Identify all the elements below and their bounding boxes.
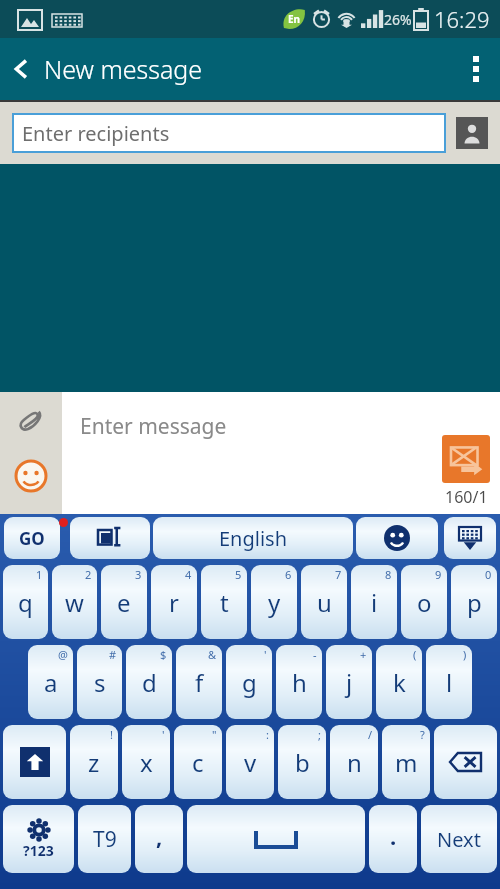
staticText: 6	[285, 567, 292, 582]
staticText: v	[244, 746, 257, 779]
button[interactable]: l	[426, 645, 472, 719]
staticText: !	[110, 727, 113, 742]
button[interactable]: y	[251, 565, 297, 639]
button[interactable]: v	[226, 725, 274, 799]
staticText: f	[195, 666, 204, 699]
staticText: English	[219, 525, 288, 552]
button[interactable]: t	[201, 565, 247, 639]
button[interactable]: f	[176, 645, 222, 719]
button[interactable]: d	[126, 645, 172, 719]
button[interactable]: b	[278, 725, 326, 799]
button[interactable]: Enter recipients	[12, 113, 446, 153]
button[interactable]: z	[70, 725, 118, 799]
button[interactable]: w	[52, 565, 97, 639]
staticText: +	[360, 647, 367, 662]
staticText: i	[371, 586, 378, 619]
staticText: q	[18, 586, 33, 619]
staticText: g	[242, 666, 257, 699]
staticText: k	[393, 666, 406, 699]
button[interactable]: Backspace	[434, 725, 497, 799]
staticText: x	[140, 746, 153, 779]
staticText: s	[94, 666, 106, 699]
staticText: )	[463, 647, 467, 662]
staticText: t	[220, 586, 229, 619]
button[interactable]: Hide keyboard	[444, 517, 496, 559]
staticText: 160/1	[445, 486, 488, 508]
button[interactable]: Shift	[3, 725, 66, 799]
button[interactable]: x	[122, 725, 170, 799]
staticText: #	[109, 647, 117, 662]
staticText: ,	[156, 821, 163, 851]
button[interactable]: English	[153, 517, 353, 559]
button[interactable]: Choose contact	[456, 117, 488, 149]
staticText: &	[208, 647, 217, 662]
staticText: ?123	[23, 841, 54, 860]
staticText: T9	[93, 825, 117, 854]
button[interactable]: .	[369, 805, 417, 873]
button[interactable]: j	[326, 645, 372, 719]
button[interactable]: T9	[78, 805, 131, 873]
button[interactable]: g	[226, 645, 272, 719]
staticText: (	[413, 647, 417, 662]
button[interactable]: Insert emoticon	[3, 448, 59, 504]
staticText: j	[346, 666, 353, 699]
staticText: -	[313, 647, 317, 662]
staticText: h	[292, 666, 307, 699]
button[interactable]: s	[77, 645, 122, 719]
button[interactable]: Emoji	[356, 517, 438, 559]
button[interactable]: More options	[452, 38, 500, 100]
staticText: l	[446, 666, 453, 699]
staticText: Enter recipients	[22, 120, 170, 147]
button[interactable]: n	[330, 725, 378, 799]
staticText: ?	[420, 727, 425, 742]
other: Back	[0, 38, 44, 100]
staticText: 0	[485, 567, 492, 582]
button[interactable]: a	[28, 645, 73, 719]
button[interactable]: Space	[187, 805, 365, 873]
staticText: 2	[85, 567, 92, 582]
staticText: 4	[185, 567, 192, 582]
staticText: GO	[19, 527, 45, 550]
button[interactable]: m	[382, 725, 430, 799]
staticText: w	[65, 586, 84, 619]
button[interactable]: Attach	[3, 392, 59, 448]
button[interactable]: o	[401, 565, 447, 639]
staticText: Enter message	[80, 412, 227, 441]
staticText: 1	[36, 567, 43, 582]
button[interactable]: h	[276, 645, 322, 719]
button[interactable]: Symbols and settings	[3, 805, 74, 873]
staticText: :	[266, 727, 269, 742]
staticText: .	[390, 821, 397, 851]
staticText: ;	[318, 727, 321, 742]
staticText: 7	[335, 567, 342, 582]
staticText: o	[417, 586, 432, 619]
button[interactable]: i	[351, 565, 397, 639]
staticText: p	[467, 586, 482, 619]
button[interactable]: Send message	[442, 435, 490, 483]
staticText: /	[368, 727, 373, 742]
staticText: c	[192, 746, 204, 779]
staticText: Next	[437, 826, 481, 853]
button[interactable]: e	[101, 565, 147, 639]
staticText: d	[142, 666, 157, 699]
staticText: $	[160, 647, 167, 662]
button[interactable]: Back	[0, 38, 500, 100]
button[interactable]: Next	[421, 805, 497, 873]
button[interactable]: u	[301, 565, 347, 639]
button[interactable]: Enter message	[62, 392, 500, 514]
button[interactable]: q	[3, 565, 48, 639]
staticText: b	[295, 746, 310, 779]
button[interactable]: ,	[135, 805, 183, 873]
staticText: z	[88, 746, 100, 779]
button[interactable]: p	[451, 565, 497, 639]
staticText: e	[117, 586, 131, 619]
button[interactable]: Keyboard layout	[70, 517, 150, 559]
staticText: @	[58, 647, 68, 662]
button[interactable]: r	[151, 565, 197, 639]
button[interactable]: k	[376, 645, 422, 719]
button[interactable]: GO	[4, 517, 60, 559]
button[interactable]: c	[174, 725, 222, 799]
staticText: 9	[435, 567, 442, 582]
staticText: 8	[385, 567, 392, 582]
staticText: En	[288, 12, 301, 26]
